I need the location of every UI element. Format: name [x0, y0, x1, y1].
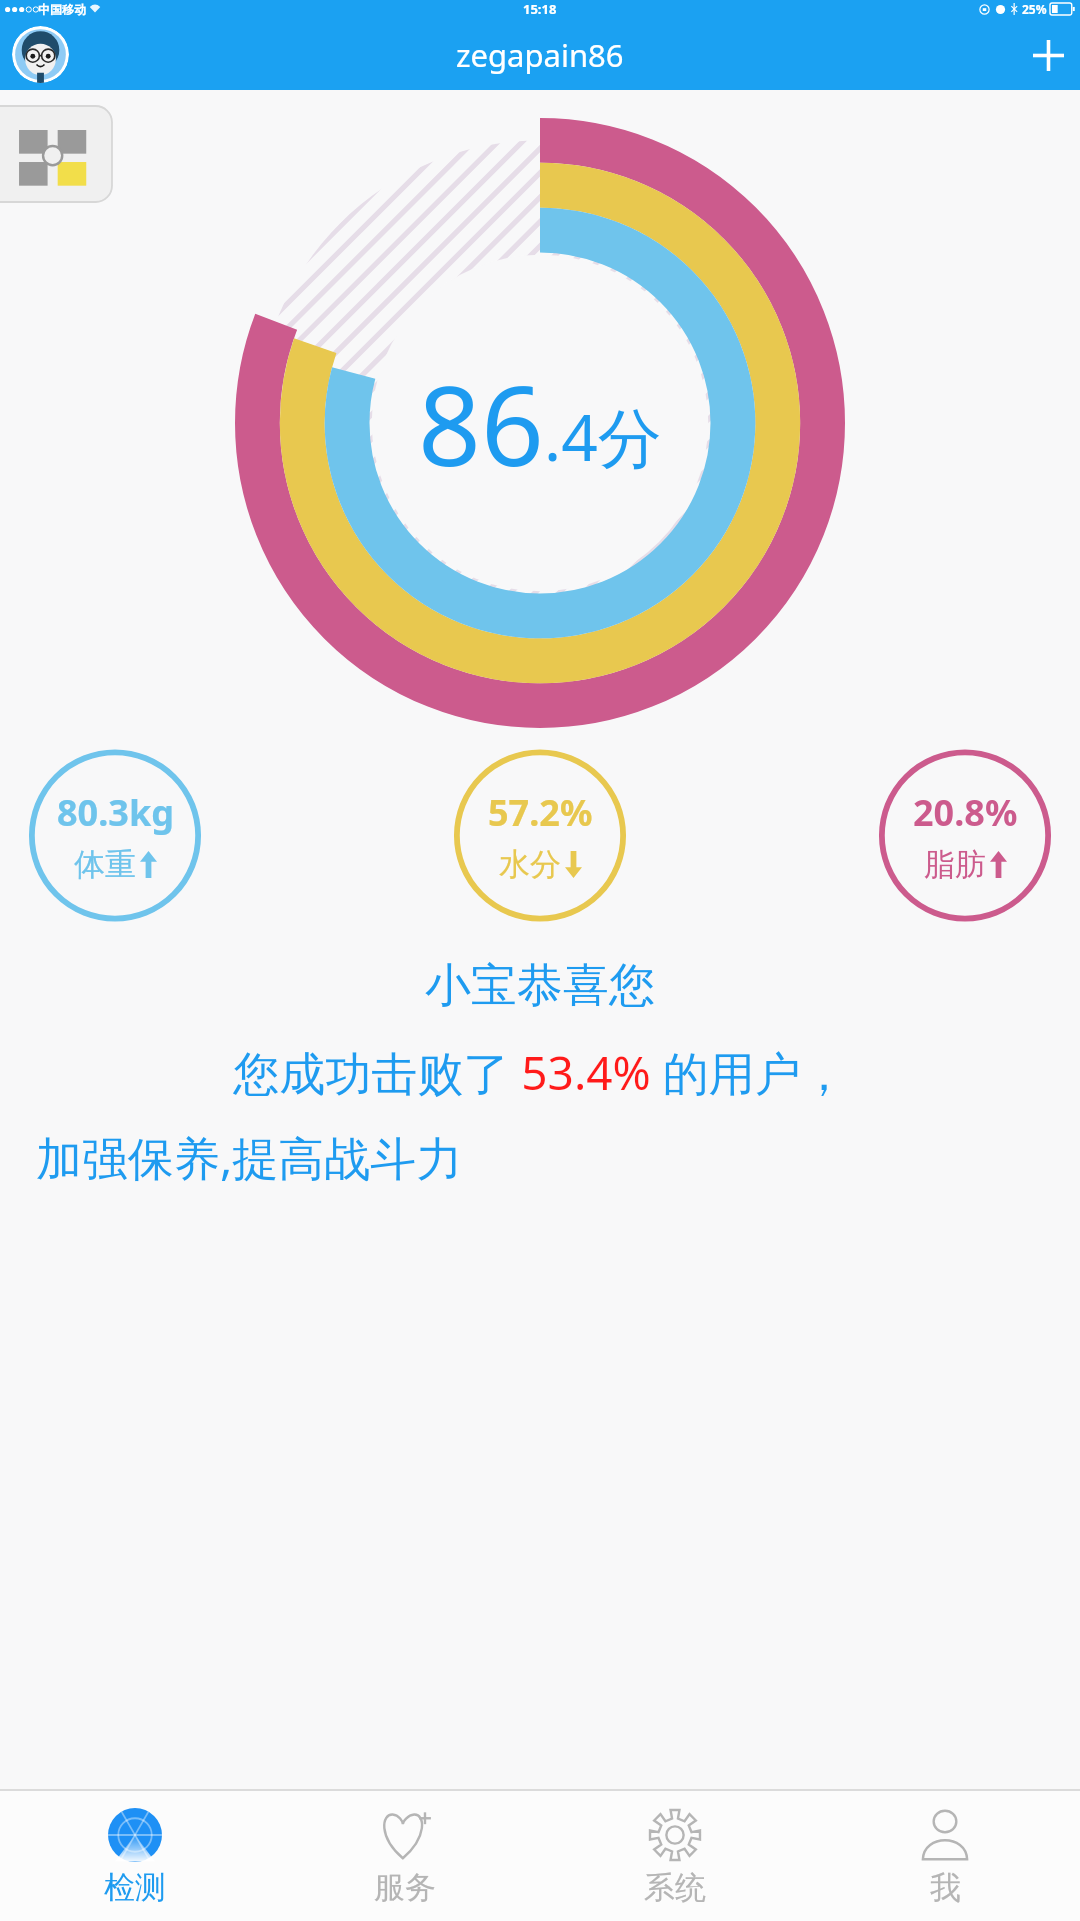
staticText: .4分 — [544, 393, 662, 480]
staticText: 体重 — [74, 845, 136, 884]
staticText: 水分 — [499, 845, 561, 884]
button[interactable]: 80.3kg — [26, 748, 204, 923]
button[interactable]: 系统 — [540, 1791, 810, 1921]
button[interactable]: Add — [1016, 23, 1080, 87]
staticText: 25% — [1022, 1, 1047, 17]
staticText: 小宝恭喜您 — [425, 957, 655, 1015]
button[interactable]: Scale device — [0, 106, 112, 202]
staticText: 中国移动 — [38, 2, 86, 17]
staticText: 系统 — [644, 1868, 706, 1907]
staticText: 57.2% — [488, 788, 593, 837]
staticText: zegapain86 — [456, 34, 624, 76]
staticText: 您成功击败了 53.4% 的用户， — [233, 1041, 847, 1104]
button[interactable]: Profile — [12, 26, 69, 83]
staticText: 15:18 — [523, 0, 557, 18]
button[interactable]: 检测 — [0, 1791, 270, 1921]
staticText: 脂肪 — [924, 845, 986, 884]
button[interactable]: 57.2% — [451, 748, 629, 923]
staticText: 86 — [418, 348, 544, 498]
staticText: 加强保养,提高战斗力 — [36, 1126, 463, 1189]
staticText: 检测 — [104, 1868, 166, 1907]
button[interactable]: 20.8% — [876, 748, 1054, 923]
staticText: 80.3kg — [57, 788, 174, 837]
button[interactable]: 我 — [810, 1791, 1080, 1921]
button[interactable]: 服务 — [270, 1791, 540, 1921]
staticText: 服务 — [374, 1868, 436, 1907]
staticText: 20.8% — [913, 788, 1018, 837]
staticText: 我 — [930, 1868, 961, 1907]
